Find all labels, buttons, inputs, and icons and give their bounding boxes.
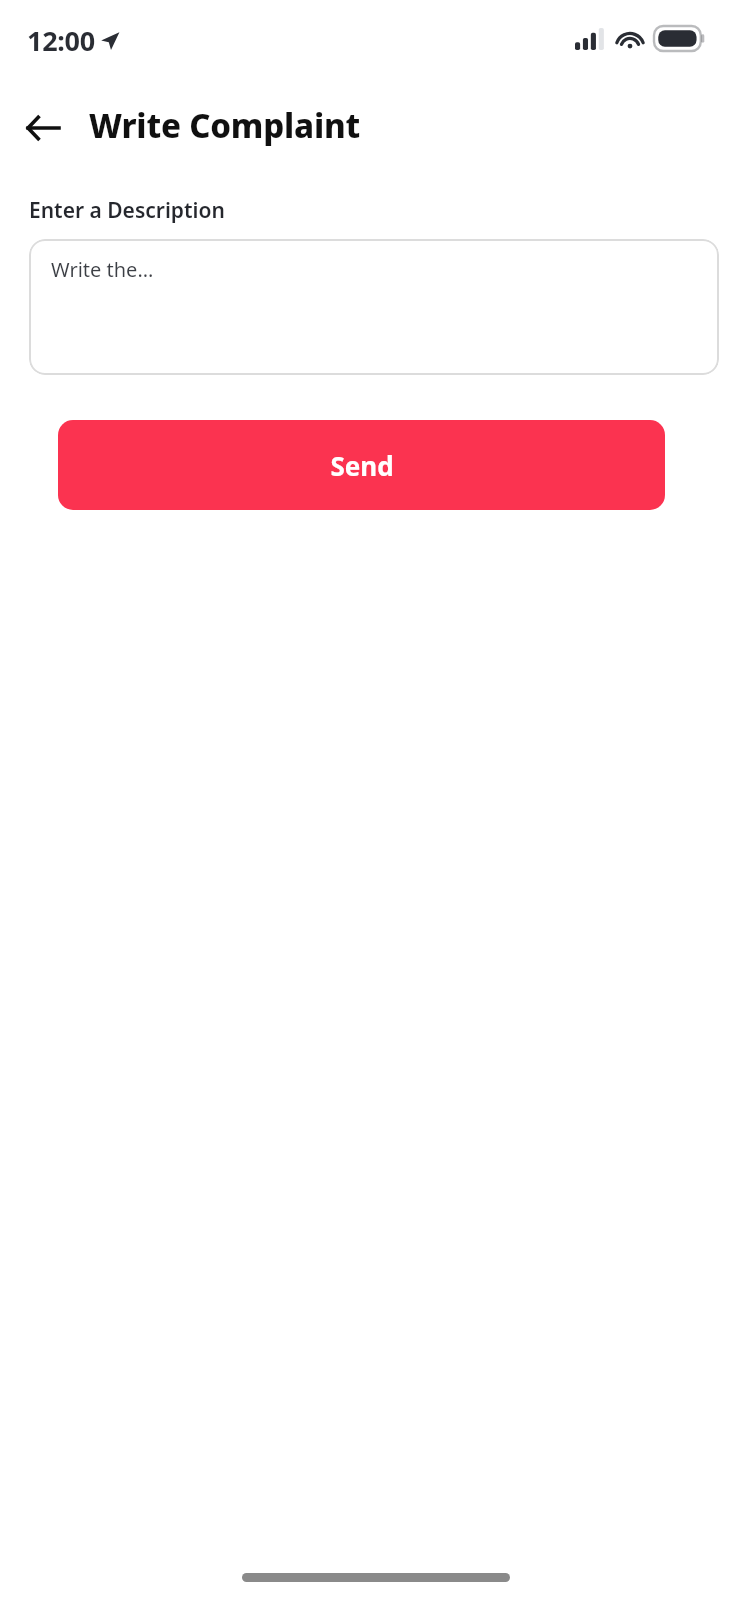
button[interactable]: Send: [58, 420, 665, 510]
staticText: Write Complaint: [89, 103, 361, 148]
button[interactable]: Write the...: [29, 239, 719, 375]
staticText: Enter a Description: [29, 196, 225, 225]
button[interactable]: Back: [14, 102, 72, 154]
staticText: Send: [330, 448, 394, 483]
staticText: Write the...: [51, 256, 154, 283]
staticText: 12:00: [27, 22, 95, 59]
